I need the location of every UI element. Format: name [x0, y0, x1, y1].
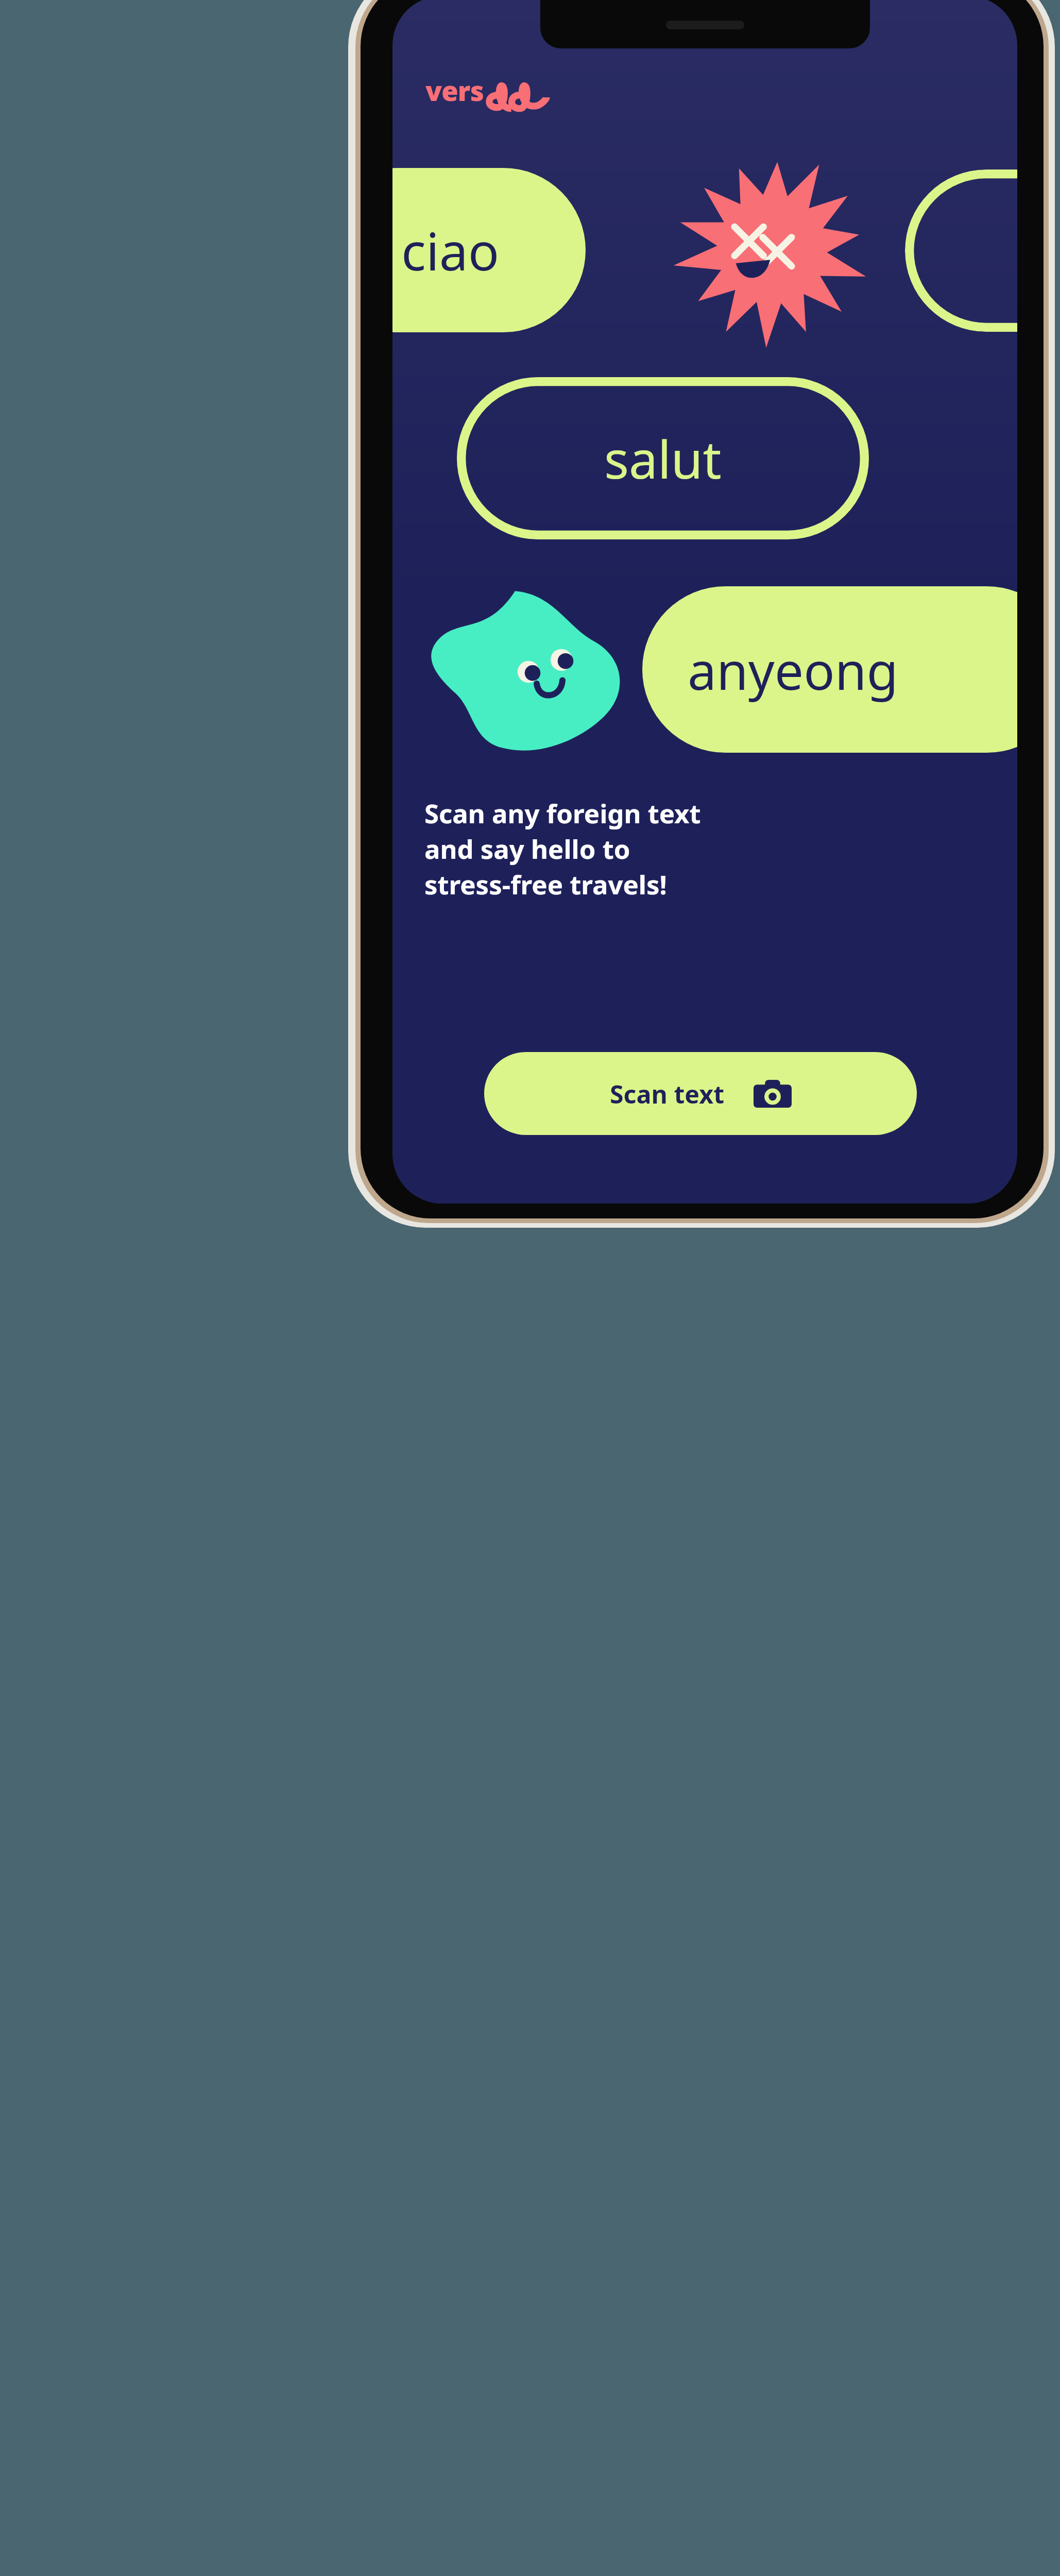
staticText: Scan text — [610, 1077, 725, 1111]
button[interactable] — [905, 170, 1017, 332]
button[interactable]: vers — [425, 72, 546, 109]
staticText: and say hello to — [424, 831, 630, 867]
staticText: salut — [604, 423, 722, 494]
other: Camera — [754, 1080, 792, 1108]
staticText: anyeong — [688, 635, 898, 705]
button[interactable]: anyeong — [642, 586, 1017, 753]
staticText: vers — [425, 72, 484, 109]
button[interactable]: Smiling blob character — [418, 584, 624, 754]
staticText: Scan any foreign text — [424, 795, 701, 831]
button[interactable]: Scan text — [484, 1052, 917, 1135]
staticText: ciao — [401, 215, 500, 285]
button[interactable]: salut — [457, 377, 869, 539]
staticText: stress-free travels! — [424, 867, 667, 902]
button[interactable]: Spiky star character — [672, 162, 873, 336]
button[interactable]: ciao — [392, 168, 586, 332]
